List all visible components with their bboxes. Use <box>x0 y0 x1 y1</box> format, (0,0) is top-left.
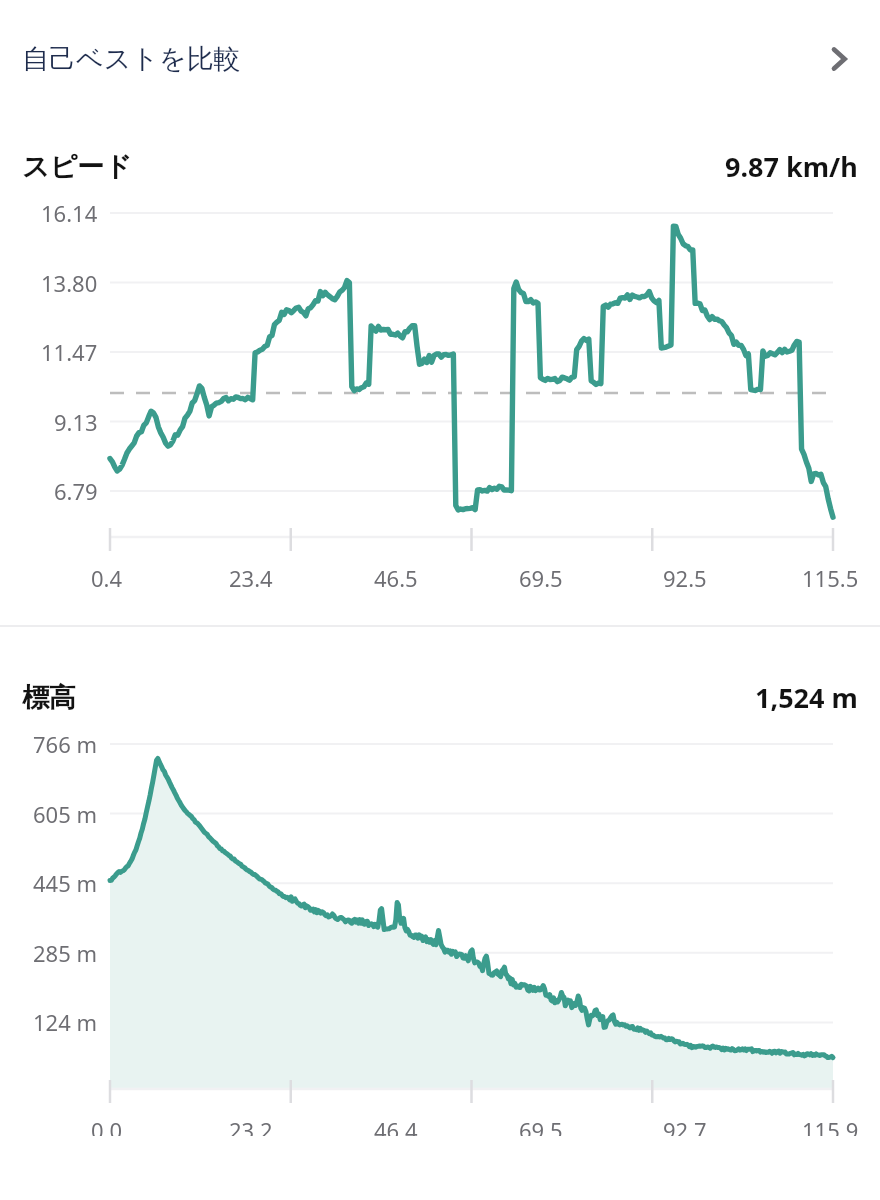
staticText: 285 m <box>33 938 98 968</box>
staticText: 9.87 km/h <box>725 148 858 185</box>
staticText: 115.5 <box>802 563 859 593</box>
staticText: 605 m <box>33 799 98 829</box>
staticText: 92.5 <box>663 563 707 593</box>
staticText: 13.80 <box>41 268 98 298</box>
staticText: 92.7 <box>663 1115 707 1136</box>
staticText: 69.5 <box>519 1115 563 1136</box>
staticText: 6.79 <box>54 476 98 506</box>
staticText: 766 m <box>33 729 98 759</box>
staticText: 1,524 m <box>755 679 858 716</box>
other: Compare personal best <box>824 42 858 76</box>
staticText: 46.5 <box>374 563 418 593</box>
staticText: 23.4 <box>229 563 273 593</box>
staticText: 標高 <box>22 681 76 715</box>
staticText: 16.14 <box>41 198 98 228</box>
staticText: 124 m <box>33 1007 98 1037</box>
staticText: スピード <box>22 150 132 184</box>
staticText: 445 m <box>33 868 98 898</box>
staticText: 46.4 <box>374 1115 418 1136</box>
staticText: 0.4 <box>91 563 123 593</box>
button[interactable]: 自己ベストを比較 <box>0 0 880 118</box>
staticText: 自己ベストを比較 <box>22 42 241 76</box>
staticText: 0.0 <box>91 1115 123 1136</box>
staticText: 115.9 <box>802 1115 859 1136</box>
staticText: 69.5 <box>519 563 563 593</box>
staticText: 23.2 <box>229 1115 273 1136</box>
staticText: 9.13 <box>54 407 98 437</box>
staticText: 11.47 <box>41 337 98 367</box>
